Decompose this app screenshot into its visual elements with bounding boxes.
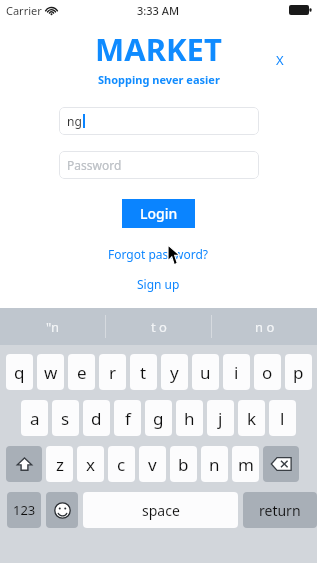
button[interactable]: k xyxy=(238,400,265,436)
staticText: p xyxy=(293,361,304,384)
button[interactable]: d xyxy=(83,400,110,436)
staticText: i xyxy=(234,361,239,384)
staticText: return xyxy=(259,501,301,520)
button[interactable]: Shift xyxy=(6,446,42,482)
staticText: q xyxy=(14,361,25,384)
staticText: d xyxy=(91,407,102,430)
staticText: n o xyxy=(255,318,275,336)
staticText: t o xyxy=(151,318,167,336)
button[interactable]: m xyxy=(232,446,259,482)
button[interactable]: f xyxy=(114,400,141,436)
button[interactable]: t xyxy=(130,354,157,390)
staticText: s xyxy=(61,407,70,430)
staticText: MARKET xyxy=(95,28,222,70)
button[interactable]: return xyxy=(243,492,317,528)
staticText: b xyxy=(178,453,189,476)
staticText: ng xyxy=(67,113,82,129)
staticText: "n xyxy=(46,318,59,336)
button[interactable]: q xyxy=(6,354,33,390)
button[interactable]: z xyxy=(46,446,73,482)
staticText: k xyxy=(247,407,257,430)
button[interactable]: n o xyxy=(212,308,317,345)
staticText: c xyxy=(117,453,126,476)
button[interactable]: x xyxy=(77,446,104,482)
staticText: o xyxy=(262,361,273,384)
button[interactable]: a xyxy=(21,400,48,436)
button[interactable]: h xyxy=(176,400,203,436)
button[interactable]: j xyxy=(207,400,234,436)
staticText: f xyxy=(125,407,131,430)
staticText: t xyxy=(140,361,147,384)
button[interactable]: 123 xyxy=(7,492,41,528)
staticText: 3:33 AM xyxy=(137,3,180,18)
button[interactable]: c xyxy=(108,446,135,482)
button[interactable]: Password xyxy=(59,151,259,179)
button[interactable]: Emoji xyxy=(46,492,78,528)
button[interactable]: Login xyxy=(122,199,195,228)
button[interactable]: o xyxy=(254,354,281,390)
staticText: v xyxy=(148,453,157,476)
button[interactable]: ng xyxy=(59,107,259,135)
button[interactable]: g xyxy=(145,400,172,436)
button[interactable]: l xyxy=(269,400,296,436)
staticText: space xyxy=(142,501,180,520)
button[interactable]: "n xyxy=(0,308,105,345)
staticText: 123 xyxy=(13,501,36,519)
staticText: m xyxy=(238,453,254,476)
button[interactable]: n xyxy=(201,446,228,482)
staticText: e xyxy=(77,361,87,384)
staticText: j xyxy=(218,407,223,430)
staticText: n xyxy=(209,453,220,476)
button[interactable]: r xyxy=(99,354,126,390)
staticText: Shopping never easier xyxy=(98,72,220,87)
staticText: z xyxy=(56,453,64,476)
staticText: r xyxy=(109,361,117,384)
button[interactable]: b xyxy=(170,446,197,482)
staticText: h xyxy=(184,407,195,430)
button[interactable]: p xyxy=(285,354,312,390)
button[interactable]: w xyxy=(37,354,64,390)
staticText: g xyxy=(153,407,164,430)
staticText: Password xyxy=(67,157,122,173)
button[interactable]: Close xyxy=(270,50,290,70)
button[interactable]: y xyxy=(161,354,188,390)
button[interactable]: e xyxy=(68,354,95,390)
button[interactable]: u xyxy=(192,354,219,390)
staticText: w xyxy=(44,361,58,384)
staticText: Carrier xyxy=(6,3,42,18)
staticText: X xyxy=(276,51,284,69)
staticText: l xyxy=(280,407,285,430)
staticText: y xyxy=(170,361,179,384)
button[interactable]: space xyxy=(83,492,238,528)
button[interactable]: Sign up xyxy=(131,274,186,294)
button[interactable]: i xyxy=(223,354,250,390)
staticText: a xyxy=(30,407,40,430)
button[interactable]: t o xyxy=(106,308,211,345)
button[interactable]: Forgot password? xyxy=(102,244,215,264)
button[interactable]: s xyxy=(52,400,79,436)
staticText: u xyxy=(200,361,211,384)
staticText: Forgot password? xyxy=(108,246,209,262)
staticText: Login xyxy=(140,204,178,223)
staticText: Sign up xyxy=(137,276,180,292)
button[interactable]: v xyxy=(139,446,166,482)
button[interactable]: Backspace xyxy=(263,446,299,482)
staticText: x xyxy=(86,453,95,476)
